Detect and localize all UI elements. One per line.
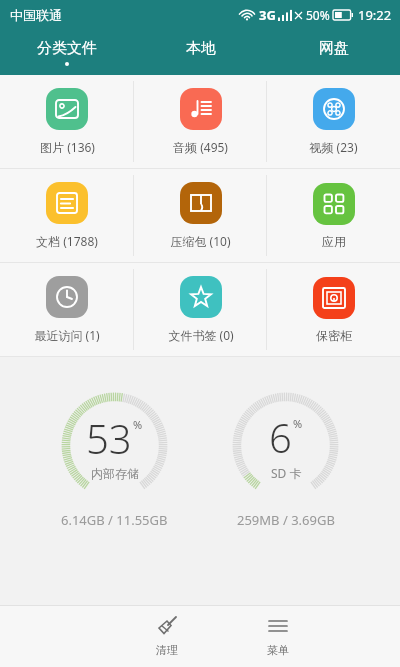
staticText: % <box>293 416 303 431</box>
staticText: 中国联通 <box>10 7 62 23</box>
staticText: 视频 (23) <box>309 139 358 155</box>
staticText: 菜单 <box>267 643 289 657</box>
staticText: 音频 (495) <box>173 139 228 155</box>
staticText: 应用 <box>322 234 346 249</box>
staticText: 文件书签 (0) <box>168 327 234 343</box>
button[interactable]: 图片 (136) <box>0 75 134 168</box>
button[interactable]: 应用 <box>267 169 400 262</box>
staticText: 本地 <box>186 39 216 58</box>
button[interactable]: 网盘 <box>267 30 400 75</box>
button[interactable]: 保密柜 <box>267 263 400 356</box>
staticText: 6.14GB / 11.55GB <box>61 511 168 529</box>
staticText: 259MB / 3.69GB <box>237 511 335 529</box>
staticText: 网盘 <box>319 39 349 58</box>
staticText: 6 <box>269 410 292 464</box>
staticText: % <box>133 417 143 432</box>
staticText: SD 卡 <box>271 465 302 481</box>
button[interactable]: 视频 (23) <box>267 75 400 168</box>
staticText: 最近访问 (1) <box>34 327 100 343</box>
staticText: 3G <box>259 6 276 24</box>
staticText: 清理 <box>156 643 178 657</box>
staticText: 内部存储 <box>91 466 139 481</box>
button[interactable]: 音频 (495) <box>134 75 267 168</box>
staticText: 压缩包 (10) <box>170 233 231 249</box>
staticText: 53 <box>86 411 132 465</box>
button[interactable]: 本地 <box>134 30 267 75</box>
button[interactable]: 清理 <box>111 605 222 667</box>
staticText: 50% <box>306 7 330 23</box>
button[interactable]: 分类文件 <box>0 30 134 75</box>
staticText: 图片 (136) <box>40 139 95 155</box>
button[interactable]: 最近访问 (1) <box>0 263 134 356</box>
staticText: 保密柜 <box>316 328 352 343</box>
staticText: 19:22 <box>358 6 392 24</box>
button[interactable]: 文件书签 (0) <box>134 263 267 356</box>
staticText: 文档 (1788) <box>36 233 98 249</box>
button[interactable]: 文档 (1788) <box>0 169 134 262</box>
button[interactable]: 菜单 <box>222 605 333 667</box>
staticText: 分类文件 <box>37 39 97 58</box>
button[interactable]: 压缩包 (10) <box>134 169 267 262</box>
